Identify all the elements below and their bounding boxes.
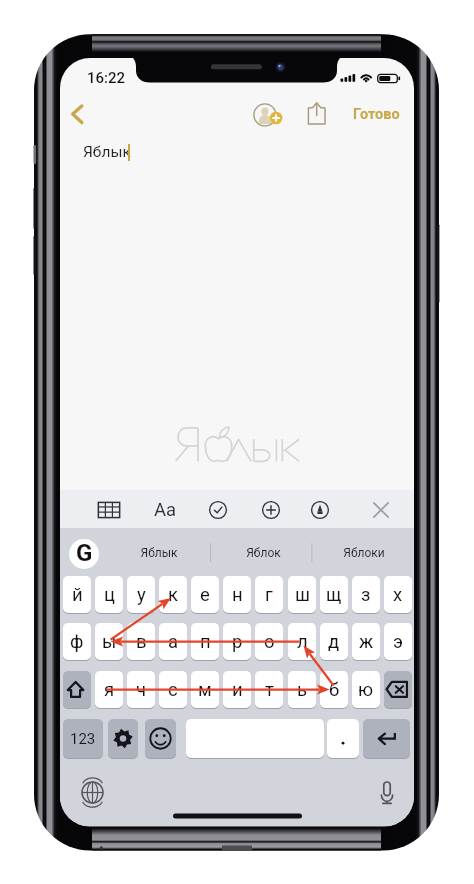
button[interactable]: ш — [288, 576, 316, 613]
button[interactable]: о — [255, 623, 283, 660]
staticText: б — [329, 679, 340, 701]
button[interactable]: г — [255, 576, 283, 613]
staticText: а — [168, 631, 179, 653]
staticText: ж — [359, 631, 374, 653]
button[interactable]: я — [95, 671, 123, 708]
button[interactable]: ь — [288, 671, 316, 708]
button[interactable]: Voice input — [380, 782, 394, 804]
button[interactable]: Готово — [344, 99, 408, 129]
staticText: ц — [104, 584, 115, 606]
button[interactable]: в — [127, 623, 155, 660]
button[interactable]: Checklist — [201, 493, 235, 527]
staticText: ь — [297, 679, 308, 701]
staticText: я — [104, 679, 115, 701]
staticText: Яблык — [83, 143, 131, 161]
button[interactable]: Change language — [81, 781, 104, 804]
button[interactable]: р — [223, 623, 251, 660]
staticText: у — [137, 584, 146, 606]
button[interactable]: щ — [320, 576, 348, 613]
button[interactable]: ю — [352, 671, 380, 708]
staticText: т — [265, 679, 274, 701]
staticText: ч — [136, 679, 147, 701]
button[interactable]: Backspace — [384, 671, 412, 708]
button[interactable]: ч — [127, 671, 155, 708]
staticText: е — [200, 584, 210, 606]
button[interactable]: т — [255, 671, 283, 708]
button[interactable]: Shift — [63, 671, 91, 708]
staticText: р — [232, 631, 243, 653]
button[interactable]: у — [127, 576, 155, 613]
staticText: Яблык — [140, 546, 178, 560]
staticText: в — [136, 631, 147, 653]
button[interactable]: н — [223, 576, 251, 613]
button[interactable]: и — [223, 671, 251, 708]
staticText: G — [76, 539, 93, 567]
button[interactable]: е — [191, 576, 219, 613]
staticText: щ — [326, 584, 342, 606]
staticText: и — [232, 679, 243, 701]
button[interactable]: к — [159, 576, 187, 613]
staticText: з — [361, 584, 371, 606]
button[interactable]: Enter — [363, 719, 410, 758]
staticText: х — [393, 584, 403, 606]
staticText: к — [168, 584, 178, 606]
button[interactable]: л — [288, 623, 316, 660]
button[interactable]: Close keyboard — [364, 493, 398, 527]
button[interactable]: а — [159, 623, 187, 660]
staticText: й — [72, 584, 83, 606]
staticText: д — [328, 631, 340, 653]
button[interactable]: Add people — [252, 102, 288, 132]
staticText: о — [264, 631, 275, 653]
button[interactable]: э — [384, 623, 412, 660]
button[interactable]: п — [191, 623, 219, 660]
staticText: л — [297, 631, 308, 653]
button[interactable]: з — [352, 576, 380, 613]
staticText: Яблоки — [343, 546, 385, 560]
button[interactable]: Яблык — [113, 539, 205, 567]
button[interactable]: й — [63, 576, 91, 613]
staticText: п — [200, 631, 211, 653]
staticText: Яблок — [246, 546, 281, 560]
button[interactable]: Яблок — [217, 539, 309, 567]
staticText: с — [168, 679, 178, 701]
staticText: 16:22 — [87, 69, 126, 87]
staticText: 123 — [70, 730, 96, 748]
button[interactable]: Back — [66, 100, 92, 128]
button[interactable]: ф — [63, 623, 91, 660]
button[interactable]: Emoji — [145, 719, 176, 758]
staticText: ш — [295, 584, 310, 606]
button[interactable]: ы — [95, 623, 123, 660]
button[interactable]: ц — [95, 576, 123, 613]
button[interactable]: Table — [92, 493, 126, 527]
button[interactable]: д — [320, 623, 348, 660]
staticText: н — [232, 584, 243, 606]
button[interactable]: Period — [327, 719, 359, 758]
staticText: м — [198, 679, 212, 701]
staticText: ы — [102, 631, 117, 653]
staticText: э — [393, 631, 403, 653]
button[interactable]: Markup — [303, 493, 337, 527]
button[interactable]: Яблоки — [318, 539, 410, 567]
staticText: Aa — [154, 499, 177, 521]
staticText: ю — [358, 679, 374, 701]
button[interactable]: Space — [186, 719, 324, 758]
button[interactable]: Gboard menu — [69, 539, 99, 569]
button[interactable]: м — [191, 671, 219, 708]
button[interactable]: Share — [302, 100, 332, 130]
button[interactable]: Text format — [148, 493, 182, 527]
button[interactable]: 123 — [63, 719, 103, 758]
button[interactable]: Add attachment — [254, 493, 288, 527]
button[interactable]: Settings — [108, 719, 138, 758]
staticText: Готово — [353, 106, 400, 123]
button[interactable]: ж — [352, 623, 380, 660]
staticText: ф — [70, 631, 84, 653]
button[interactable]: с — [159, 671, 187, 708]
staticText: г — [265, 584, 273, 606]
button[interactable]: х — [384, 576, 412, 613]
button[interactable]: б — [320, 671, 348, 708]
